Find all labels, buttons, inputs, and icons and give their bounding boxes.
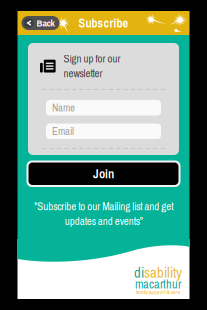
staticText: macarthur	[135, 276, 181, 292]
button[interactable]: Join	[26, 160, 180, 187]
staticText: Sign up for our newsletter	[64, 51, 121, 81]
staticText: Subscribe	[78, 15, 128, 31]
staticText: Join	[93, 165, 114, 182]
staticText: sability	[144, 263, 182, 282]
staticText: "Subscribe to our Mailing list and get u…	[34, 199, 173, 228]
staticText: Back	[36, 16, 54, 30]
staticText: Email	[52, 124, 74, 138]
staticText: family support & care	[135, 288, 180, 296]
staticText: di	[134, 263, 144, 282]
button[interactable]: Back	[21, 16, 59, 30]
staticText: Name	[52, 101, 75, 115]
